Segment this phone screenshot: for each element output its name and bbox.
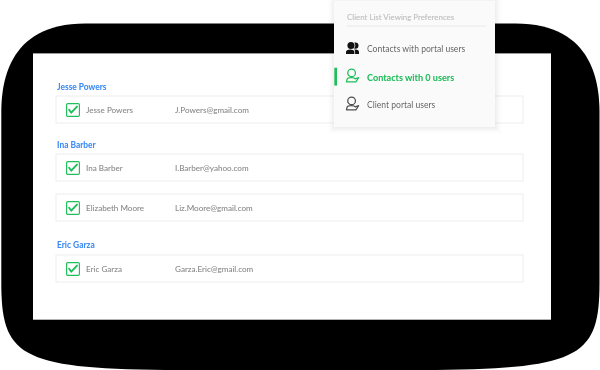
button[interactable]: Eric Garza bbox=[56, 255, 523, 282]
staticText: Ina Barber bbox=[57, 140, 96, 150]
button[interactable]: Client portal users bbox=[334, 91, 495, 119]
staticText: Client List Viewing Preferences bbox=[347, 12, 455, 21]
staticText: Liz.Moore@gmail.com bbox=[175, 203, 253, 213]
staticText: Contacts with portal users bbox=[367, 44, 466, 54]
staticText: Garza.Eric@gmail.com bbox=[175, 264, 254, 274]
staticText: Jesse Powers bbox=[86, 105, 134, 115]
button[interactable]: Jesse Powers bbox=[56, 96, 523, 123]
staticText: Contacts with 0 users bbox=[367, 72, 455, 83]
staticText: J.Powers@gmail.com bbox=[175, 105, 249, 115]
staticText: Elizabeth Moore bbox=[86, 203, 145, 213]
button[interactable]: Elizabeth Moore bbox=[56, 194, 523, 221]
staticText: I.Barber@yahoo.com bbox=[175, 163, 249, 173]
button[interactable]: Contacts with portal users bbox=[334, 35, 495, 63]
staticText: Eric Garza bbox=[57, 240, 95, 250]
staticText: Eric Garza bbox=[86, 264, 122, 274]
button[interactable]: Contacts with 0 users bbox=[334, 63, 495, 91]
staticText: Jesse Powers bbox=[57, 82, 107, 92]
staticText: Ina Barber bbox=[86, 163, 123, 173]
staticText: Client portal users bbox=[367, 100, 436, 110]
button[interactable]: Ina Barber bbox=[56, 154, 523, 181]
